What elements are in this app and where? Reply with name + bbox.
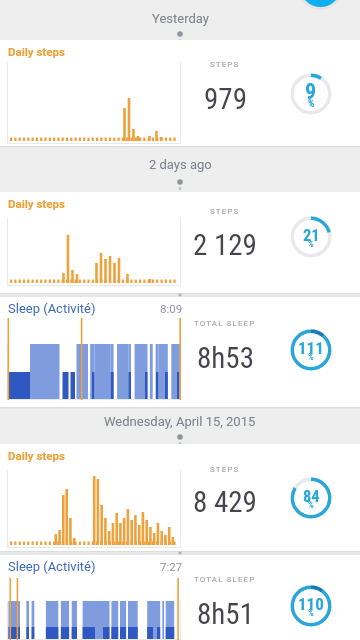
staticText: Sleep (Activité) bbox=[8, 559, 96, 574]
staticText: 9 bbox=[305, 79, 317, 103]
staticText: 7:27 bbox=[160, 560, 183, 573]
staticText: 2 days ago bbox=[149, 157, 212, 172]
staticText: TOTAL SLEEP bbox=[194, 319, 256, 328]
staticText: TOTAL SLEEP bbox=[194, 575, 256, 584]
button[interactable]: Daily steps bbox=[0, 444, 360, 551]
staticText: STEPS bbox=[210, 207, 240, 216]
staticText: 979 bbox=[204, 82, 247, 116]
staticText: Wednesday, April 15, 2015 bbox=[104, 414, 256, 429]
staticText: STEPS bbox=[210, 465, 240, 474]
button[interactable]: Daily steps bbox=[0, 192, 360, 293]
button[interactable] bbox=[300, 0, 341, 7]
button[interactable]: Sleep (Activité) bbox=[0, 555, 360, 640]
staticText: 2 129 bbox=[193, 228, 257, 262]
button[interactable]: Sleep (Activité) bbox=[0, 297, 360, 407]
staticText: Daily steps bbox=[8, 449, 65, 462]
staticText: % bbox=[308, 608, 314, 619]
staticText: 8 429 bbox=[193, 485, 257, 519]
staticText: % bbox=[308, 98, 315, 110]
staticText: 8:09 bbox=[160, 302, 183, 315]
staticText: 110 bbox=[298, 594, 324, 614]
staticText: Yesterday bbox=[152, 11, 209, 26]
staticText: 8h53 bbox=[197, 341, 254, 375]
staticText: 21 bbox=[303, 226, 320, 245]
staticText: 8h51 bbox=[197, 597, 254, 631]
staticText: Daily steps bbox=[8, 45, 65, 58]
staticText: 84 bbox=[303, 487, 320, 506]
staticText: % bbox=[308, 500, 314, 511]
staticText: Daily steps bbox=[8, 197, 65, 210]
button[interactable]: Daily steps bbox=[0, 40, 360, 146]
staticText: % bbox=[308, 239, 314, 250]
staticText: STEPS bbox=[210, 60, 240, 69]
staticText: % bbox=[308, 352, 314, 363]
staticText: 111 bbox=[298, 338, 324, 358]
staticText: Sleep (Activité) bbox=[8, 301, 96, 316]
